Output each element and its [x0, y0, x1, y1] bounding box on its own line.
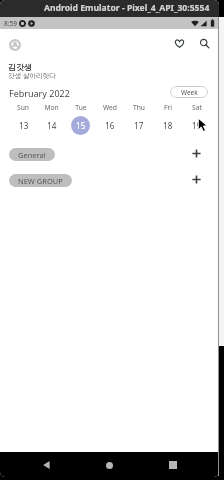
- button[interactable]: Add NEW GROUP: [188, 171, 205, 188]
- staticText: Tue: [75, 103, 87, 112]
- staticText: 16: [105, 120, 115, 131]
- staticText: 17: [134, 120, 144, 131]
- button[interactable]: 18: [158, 116, 177, 135]
- staticText: 19: [192, 120, 202, 131]
- button[interactable]: Week: [170, 86, 208, 98]
- button[interactable]: 17: [129, 116, 148, 135]
- button[interactable]: General: [9, 148, 55, 161]
- staticText: Sun: [17, 103, 29, 112]
- button[interactable]: 15: [71, 116, 90, 135]
- button[interactable]: Home: [99, 455, 119, 475]
- staticText: 14: [47, 120, 57, 131]
- button[interactable]: 14: [42, 116, 61, 135]
- staticText: General: [18, 150, 46, 160]
- button[interactable]: Profile: [5, 35, 24, 54]
- staticText: 15: [76, 120, 86, 131]
- button[interactable]: Back: [37, 455, 57, 475]
- staticText: 18: [163, 120, 173, 131]
- staticText: 8:59: [4, 19, 17, 28]
- staticText: Android Emulator - Pixel_4_API_30:5554: [44, 2, 210, 14]
- staticText: Thu: [133, 103, 145, 112]
- staticText: Fri: [164, 103, 172, 112]
- button[interactable]: Add General: [188, 145, 205, 162]
- staticText: Mon: [44, 103, 59, 112]
- button[interactable]: Search: [195, 34, 214, 53]
- staticText: 갓생 살아리랏다: [8, 71, 56, 80]
- staticText: 김갓생: [8, 62, 32, 72]
- staticText: February 2022: [9, 87, 70, 99]
- button[interactable]: Recents: [163, 455, 183, 475]
- staticText: Wed: [103, 103, 117, 112]
- staticText: Sat: [192, 103, 202, 112]
- staticText: 13: [19, 120, 29, 131]
- staticText: NEW GROUP: [18, 176, 63, 186]
- button[interactable]: NEW GROUP: [9, 174, 72, 187]
- staticText: Week: [181, 88, 198, 97]
- button[interactable]: 13: [14, 116, 33, 135]
- button[interactable]: 19: [187, 116, 206, 135]
- button[interactable]: 16: [100, 116, 119, 135]
- button[interactable]: Favorites: [170, 34, 189, 53]
